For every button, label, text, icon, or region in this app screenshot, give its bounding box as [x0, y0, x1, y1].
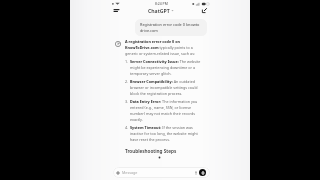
staticText: 2. [125, 79, 130, 84]
staticText: Data Entry Error: The information you en… [130, 99, 203, 122]
button[interactable]: ChatGPT [148, 7, 174, 14]
button[interactable]: New chat [200, 6, 209, 15]
staticText: ChatGPT [148, 7, 170, 14]
staticText: 1. [125, 59, 130, 64]
button[interactable]: Dictate [193, 170, 198, 175]
staticText: A registration error code 0 on KnowToDri… [125, 39, 203, 56]
staticText: Server Connectivity Issue: The website m… [130, 59, 203, 76]
staticText: Registration error code 0 knowto drive.c… [140, 22, 202, 33]
staticText: 3. [125, 99, 130, 104]
button[interactable]: Registration error code 0 knowto drive.c… [135, 19, 207, 36]
staticText: 4. [125, 125, 130, 130]
staticText: Troubleshooting Steps [125, 148, 177, 154]
button[interactable]: Attach [113, 167, 210, 178]
button[interactable]: Menu [112, 6, 121, 14]
staticText: 8:24 PM [155, 1, 168, 6]
button[interactable]: Attach [115, 170, 121, 176]
staticText: System Timeout: If the session was inact… [130, 125, 203, 142]
staticText: Browser Compatibility: An outdated brows… [130, 79, 203, 96]
staticText: Message [122, 170, 138, 175]
button[interactable]: Voice mode [199, 169, 206, 176]
